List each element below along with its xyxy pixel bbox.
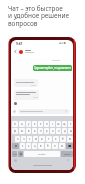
button[interactable]: й [12,121,18,127]
button[interactable]: о [50,128,55,134]
button[interactable]: ь [53,136,59,142]
staticText: т [48,137,50,141]
staticText: в [40,144,42,148]
button[interactable]: в [38,143,44,149]
button[interactable]: Return [61,151,73,157]
button[interactable]: ю [67,136,73,142]
staticText: Поиск [64,153,71,156]
staticText: Чат – это быстрое и удобное решение вопр… [8,4,70,28]
staticText: ц [21,122,23,126]
staticText: н [54,144,56,148]
staticText: ф [14,129,16,133]
staticText: л [58,129,60,133]
staticText: б [62,137,64,141]
staticText: пробел [38,153,46,156]
button[interactable]: Back [13,49,18,54]
staticText: ч [23,137,25,141]
staticText: и [41,137,43,141]
button[interactable]: ш [56,121,61,127]
button[interactable]: м [33,136,38,142]
button[interactable]: н [52,143,58,149]
button[interactable]: а [32,128,37,134]
button[interactable]: з [20,143,25,149]
button[interactable]: ы [19,128,25,134]
staticText: х [28,144,30,148]
button[interactable]: я [15,136,20,142]
staticText: о [52,129,54,133]
button[interactable]: ж [68,128,73,134]
staticText: а [34,129,36,133]
staticText: 123 [13,153,17,156]
staticText: д [64,129,66,133]
button[interactable]: ч [21,136,26,142]
staticText: у [28,122,30,126]
button[interactable]: щ [62,121,67,127]
button[interactable]: Numbers [12,151,17,157]
button[interactable]: м [59,143,65,149]
staticText: с [29,137,31,141]
staticText: ж [70,129,72,133]
staticText: ь [55,137,57,141]
button[interactable]: р [44,128,49,134]
staticText: Здравствуйте, подскажите [34,66,72,70]
staticText: е [40,122,42,126]
button[interactable]: с [27,136,32,142]
staticText: й [14,122,16,126]
button[interactable]: Add attachment [13,110,16,113]
staticText: к [34,122,36,126]
staticText: ш [57,122,60,126]
staticText: н [46,122,48,126]
button[interactable]: г [50,121,55,127]
staticText: м [61,144,63,148]
button[interactable]: б [60,136,66,142]
staticText: ц [34,144,36,148]
button[interactable]: у [26,121,31,127]
staticText: з [22,144,24,148]
staticText: п [40,129,42,133]
button[interactable]: Shift [12,143,19,149]
staticText: в [28,129,30,133]
button[interactable]: Emoji [18,151,23,157]
staticText: ю [69,137,72,141]
staticText: м [35,137,37,141]
button[interactable] [14,90,39,100]
button[interactable]: п [38,128,43,134]
button[interactable]: ц [19,121,25,127]
button[interactable]: Backspace [66,143,73,149]
staticText: щ [63,122,66,126]
button[interactable]: и [39,136,45,142]
button[interactable]: з [68,121,73,127]
staticText: я [17,137,19,141]
button[interactable]: е [38,121,43,127]
staticText: 9:41 [16,42,23,46]
staticText: б [47,144,49,148]
button[interactable]: Здравствуйте, подскажите [33,65,72,71]
button[interactable]: Space [24,151,60,157]
button[interactable]: х [26,143,31,149]
staticText: г [52,122,54,126]
button[interactable]: н [44,121,49,127]
button[interactable]: д [62,128,67,134]
button[interactable] [18,109,70,114]
button[interactable] [14,79,38,87]
button[interactable]: к [32,121,37,127]
button[interactable]: ц [32,143,37,149]
staticText: р [46,129,48,133]
button[interactable]: т [46,136,52,142]
button[interactable]: ф [12,128,18,134]
staticText: ы [21,129,23,133]
staticText: з [70,122,72,126]
button[interactable]: л [56,128,61,134]
button[interactable]: в [26,128,31,134]
button[interactable]: б [45,143,51,149]
